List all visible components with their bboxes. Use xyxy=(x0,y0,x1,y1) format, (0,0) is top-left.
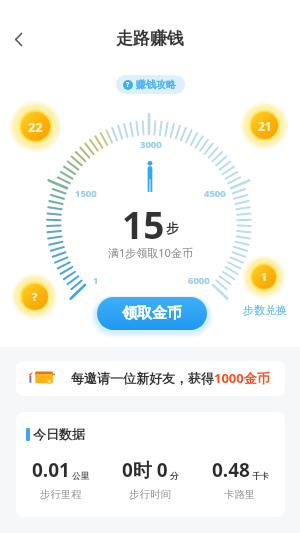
staticText: 今日数据 xyxy=(33,426,85,442)
staticText: ? xyxy=(126,80,130,90)
button[interactable]: 每邀请一位新好友，获得1000金币 xyxy=(16,361,285,396)
staticText: 赚钱攻略 xyxy=(136,78,176,91)
button[interactable]: Coin 21 xyxy=(240,101,289,150)
staticText: 4500 xyxy=(204,187,226,200)
staticText: 公里 xyxy=(72,471,89,482)
button[interactable]: Coin 22 xyxy=(9,100,62,153)
staticText: 1 xyxy=(261,270,268,284)
staticText: 22 xyxy=(28,118,43,135)
staticText: 1 xyxy=(93,274,99,287)
staticText: 6000 xyxy=(188,274,210,287)
button[interactable]: Coin ? xyxy=(11,273,58,320)
staticText: 步数兑换 xyxy=(243,303,287,317)
staticText: 0.01 xyxy=(32,457,70,483)
staticText: 领取金币 xyxy=(122,304,182,323)
staticText: 15 xyxy=(122,199,165,239)
staticText: 步 xyxy=(166,220,179,236)
button[interactable]: Back xyxy=(4,25,33,54)
staticText: 步行时间 xyxy=(129,488,171,501)
staticText: 走路赚钱 xyxy=(116,28,184,49)
staticText: 卡路里 xyxy=(224,488,256,501)
staticText: 1500 xyxy=(75,187,97,200)
staticText: 0时 0 xyxy=(122,457,168,483)
staticText: 满1步领取10金币 xyxy=(108,245,193,259)
button[interactable]: 领取金币 xyxy=(97,297,207,330)
staticText: 3000 xyxy=(140,138,162,151)
staticText: 0.48 xyxy=(212,457,250,483)
staticText: 千卡 xyxy=(252,471,269,482)
staticText: 21 xyxy=(258,118,272,134)
staticText: 分 xyxy=(170,471,179,482)
staticText: 每邀请一位新好友，获得1000金币 xyxy=(71,369,270,387)
button[interactable]: Coin 1 xyxy=(242,255,286,299)
staticText: ? xyxy=(32,289,38,305)
staticText: 步行里程 xyxy=(40,488,82,501)
button[interactable]: ? xyxy=(116,75,185,94)
